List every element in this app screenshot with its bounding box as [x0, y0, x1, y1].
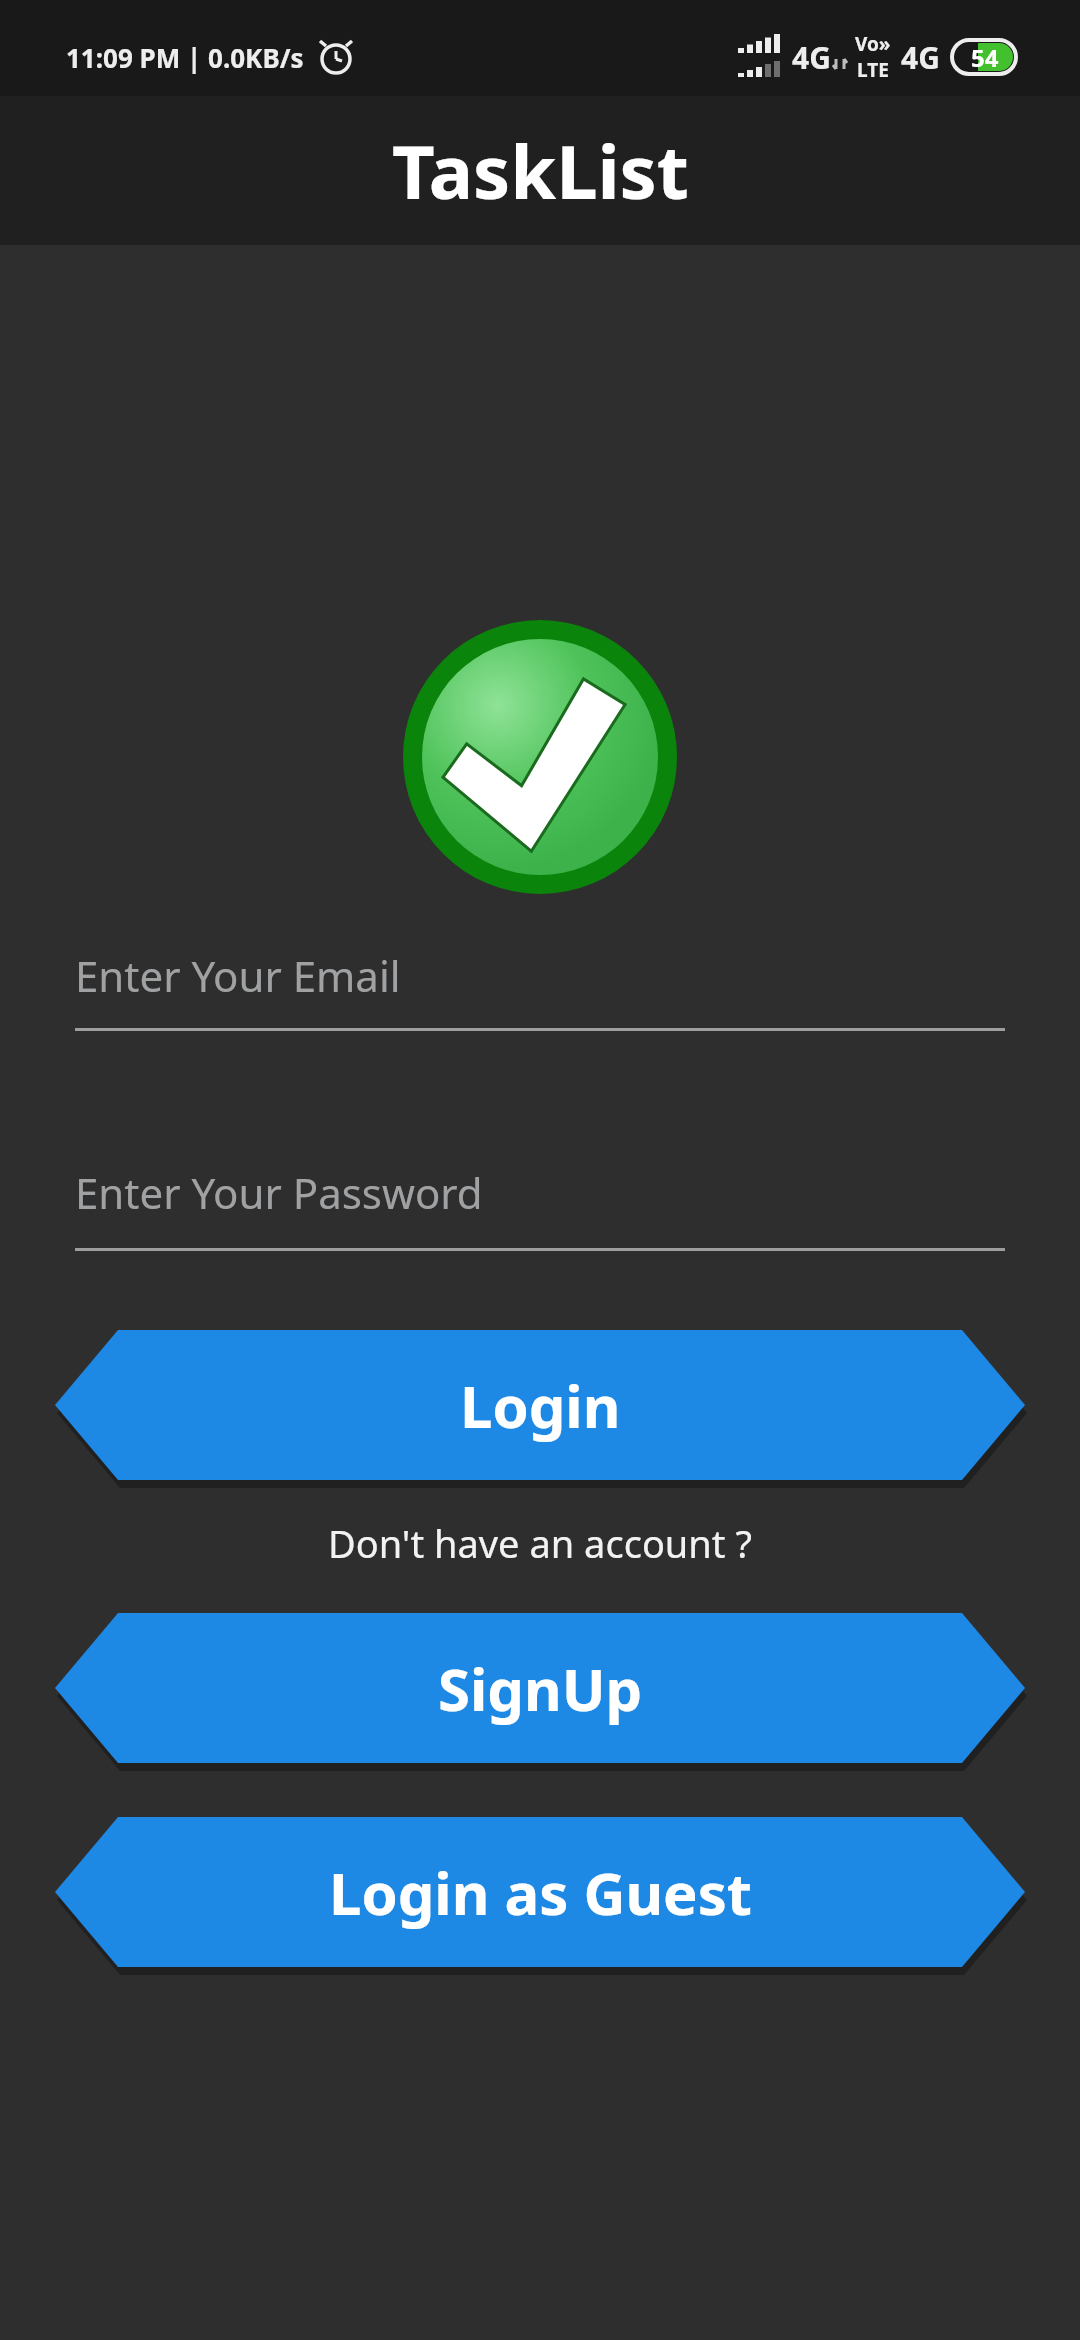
staticText: Login as Guest — [329, 1853, 752, 1932]
button[interactable]: Login — [55, 1330, 1025, 1488]
staticText: SignUp — [438, 1649, 643, 1728]
button[interactable]: Enter Your Password — [75, 1152, 1005, 1232]
button[interactable]: SignUp — [55, 1613, 1025, 1771]
staticText: Don't have an account ? — [328, 1517, 752, 1569]
staticText: TaskList — [392, 120, 689, 221]
button[interactable]: Login as Guest — [55, 1817, 1025, 1975]
staticText: LTE — [857, 57, 889, 83]
staticText: Enter Your Email — [75, 947, 401, 1004]
staticText: Vo» — [855, 31, 891, 57]
staticText: 54 — [971, 41, 999, 74]
staticText: Login — [460, 1366, 621, 1445]
staticText: 11:09 PM | 0.0KB/s — [66, 40, 304, 75]
staticText: 4G — [901, 37, 940, 78]
staticText: 4G — [792, 37, 831, 78]
button[interactable]: Enter Your Email — [75, 935, 1005, 1015]
staticText: Enter Your Password — [75, 1164, 483, 1221]
